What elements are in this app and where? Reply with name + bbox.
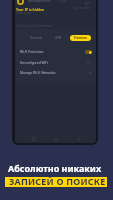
button[interactable]: Home (51, 134, 60, 143)
staticText: VIP (85, 2, 90, 6)
button[interactable]: General (25, 35, 47, 41)
button[interactable]: Manage Wi-Fi Networks (20, 67, 92, 78)
staticText: ЗАПИСЕЙ О ПОИСКЕ (9, 175, 106, 185)
staticText: General (30, 36, 42, 40)
button[interactable]: Recents (29, 134, 38, 143)
staticText: Tap for detail (74, 6, 90, 10)
button[interactable]: Premium (70, 35, 91, 41)
staticText: Connected (16, 11, 32, 15)
button[interactable]: Unconfigured WiFi (20, 57, 92, 68)
staticText: VPN (55, 36, 62, 40)
staticText: Wi-Fi Protection (20, 50, 44, 54)
staticText: Off (87, 61, 92, 65)
staticText: Choose your subscription (16, 24, 52, 28)
button[interactable]: VPN (49, 35, 67, 41)
button[interactable]: Back (74, 134, 83, 143)
staticText: Unlimited VPN (28, 0, 50, 3)
staticText: Your IP is hidden (16, 7, 45, 12)
staticText: • 7 gate (56, 0, 67, 3)
button[interactable]: Wi-Fi Protection (20, 46, 92, 57)
staticText: Абсолютно никаких (8, 162, 102, 174)
staticText: Manage Wi-Fi Networks (20, 71, 56, 75)
staticText: Premium (74, 36, 87, 40)
staticText: Unconfigured WiFi (20, 61, 48, 65)
